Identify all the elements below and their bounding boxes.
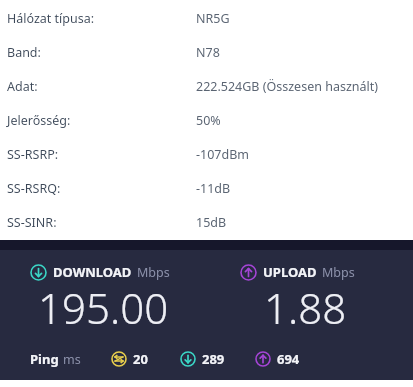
- button[interactable]: Jelerősség:: [0, 109, 413, 131]
- staticText: SS-RSRP:: [7, 146, 196, 163]
- staticText: DOWNLOAD: [53, 263, 132, 281]
- staticText: Mbps: [137, 264, 170, 281]
- staticText: 20: [133, 350, 148, 368]
- staticText: ms: [63, 351, 81, 368]
- button[interactable]: Hálózat típusa:: [0, 7, 413, 29]
- button[interactable]: Upload: [240, 263, 355, 338]
- button[interactable]: SS-SINR:: [0, 211, 413, 233]
- button[interactable]: Band:: [0, 41, 413, 63]
- button[interactable]: Adat:: [0, 75, 413, 97]
- staticText: Adat:: [7, 78, 196, 95]
- staticText: NR5G: [196, 10, 230, 27]
- staticText: 694: [277, 350, 300, 368]
- staticText: 15dB: [196, 214, 227, 231]
- other: Download: [30, 264, 47, 281]
- staticText: SS-RSRQ:: [7, 180, 196, 197]
- other: Download ping: [180, 351, 196, 367]
- other: Upload: [240, 264, 257, 281]
- staticText: Band:: [7, 44, 196, 61]
- staticText: Mbps: [322, 264, 355, 281]
- button[interactable]: SS-RSRP:: [0, 143, 413, 165]
- staticText: 195.00: [38, 279, 169, 336]
- button[interactable]: SS-RSRQ:: [0, 177, 413, 199]
- staticText: 289: [202, 350, 225, 368]
- staticText: -107dBm: [196, 146, 249, 163]
- staticText: 1.88: [264, 279, 347, 336]
- staticText: UPLOAD: [263, 263, 317, 281]
- staticText: 222.524GB (Összesen használt): [196, 78, 378, 95]
- staticText: SS-SINR:: [7, 214, 196, 231]
- staticText: 50%: [196, 112, 221, 129]
- staticText: -11dB: [196, 180, 231, 197]
- staticText: Ping: [30, 350, 59, 368]
- staticText: Jelerősség:: [7, 112, 196, 129]
- other: Upload ping: [255, 351, 271, 367]
- button[interactable]: Upload ping: [255, 350, 300, 368]
- staticText: Hálózat típusa:: [7, 10, 196, 27]
- button[interactable]: Download: [30, 263, 170, 338]
- staticText: N78: [196, 44, 220, 61]
- button[interactable]: Jitter: [111, 350, 148, 368]
- other: Jitter: [111, 351, 127, 367]
- button[interactable]: Download ping: [180, 350, 225, 368]
